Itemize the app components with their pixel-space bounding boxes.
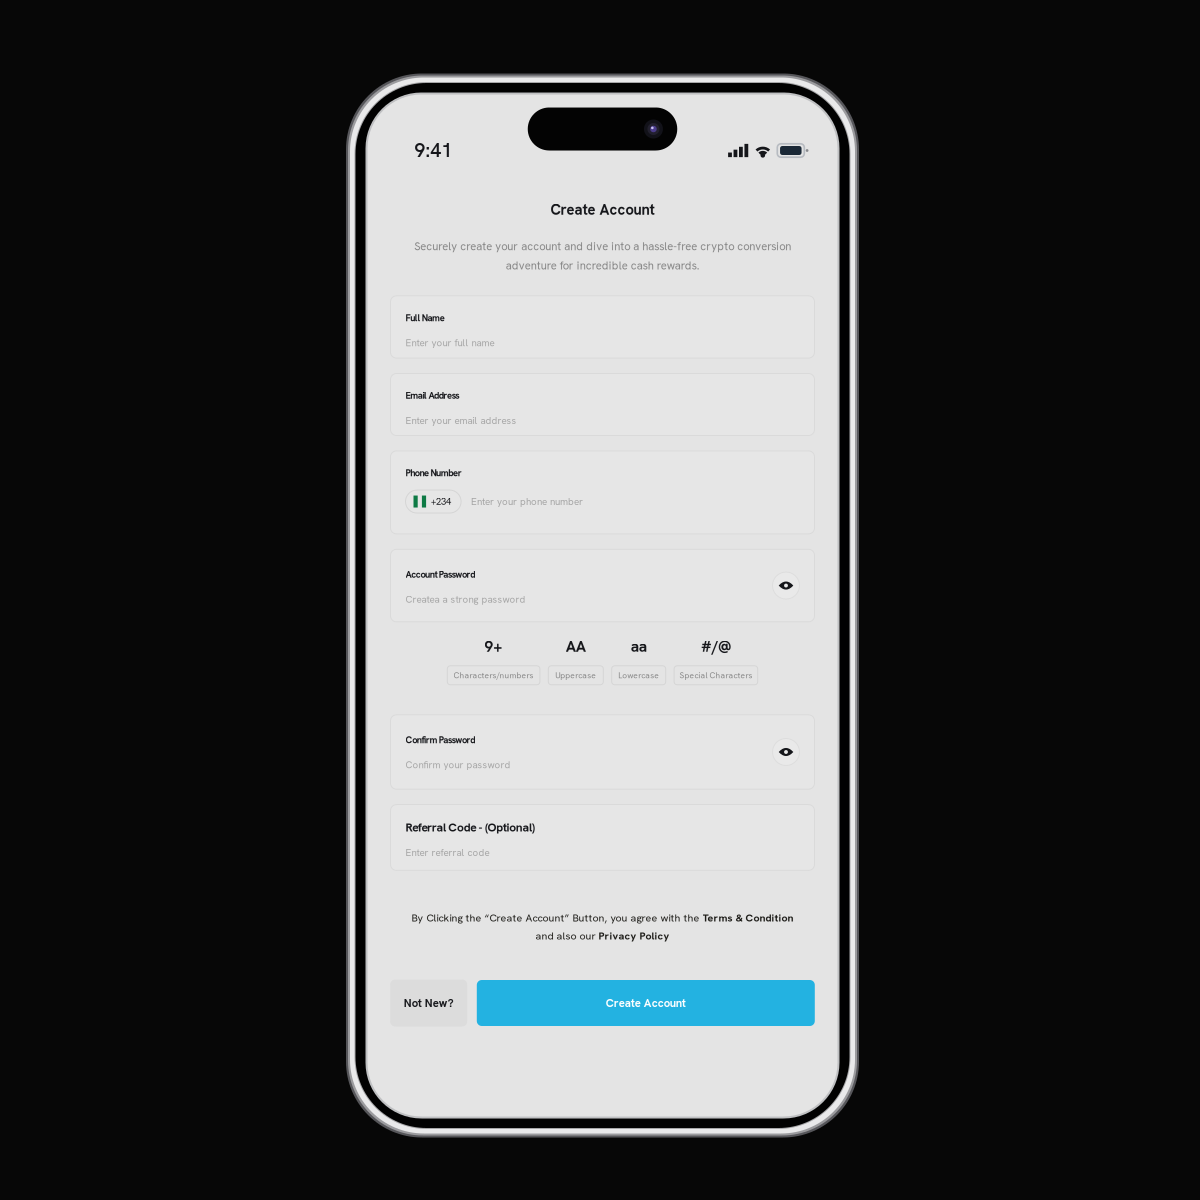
staticText: Createa a strong password xyxy=(405,593,525,606)
staticText: Enter referral code xyxy=(405,846,489,859)
staticText: Confirm Password xyxy=(405,734,475,746)
staticText: Email Address xyxy=(405,389,459,402)
button[interactable]: Email Address xyxy=(390,373,814,435)
staticText: Enter your full name xyxy=(405,336,494,349)
button[interactable]: Not New? xyxy=(390,979,467,1026)
button[interactable]: Show password xyxy=(772,738,799,765)
staticText: aa xyxy=(631,636,647,656)
staticText: Special Characters xyxy=(679,670,752,681)
button[interactable]: Referral Code - (Optional) xyxy=(390,805,814,870)
staticText: Phone Number xyxy=(405,467,462,479)
staticText: Securely create your account and dive in… xyxy=(414,239,791,273)
button[interactable]: Phone Number xyxy=(390,451,814,534)
staticText: Enter your phone number xyxy=(471,495,583,508)
staticText: Referral Code - (Optional) xyxy=(405,820,535,835)
button[interactable]: Full Name xyxy=(390,296,814,358)
staticText: Lowercase xyxy=(618,670,659,681)
staticText: Enter your email address xyxy=(405,414,516,427)
staticText: and also our Privacy Policy xyxy=(535,929,669,942)
staticText: 9+ xyxy=(485,636,503,656)
staticText: +234 xyxy=(431,495,451,508)
staticText: Create Account xyxy=(550,200,654,219)
staticText: Characters/numbers xyxy=(454,670,534,681)
staticText: Confirm your password xyxy=(405,758,510,771)
staticText: #/@ xyxy=(701,636,731,656)
staticText: By Clicking the “Create Account” Button,… xyxy=(411,911,793,925)
button[interactable]: Confirm Password xyxy=(390,715,814,789)
staticText: Create Account xyxy=(606,996,686,1010)
staticText: Not New? xyxy=(404,996,454,1010)
staticText: AA xyxy=(566,636,586,656)
staticText: Uppercase xyxy=(555,670,596,681)
button[interactable]: Show password xyxy=(772,572,799,599)
button[interactable]: Account Password xyxy=(390,549,814,622)
button[interactable]: Create Account xyxy=(477,980,815,1026)
staticText: Account Password xyxy=(405,568,475,580)
staticText: 9:41 xyxy=(414,138,452,163)
staticText: Full Name xyxy=(405,312,445,324)
